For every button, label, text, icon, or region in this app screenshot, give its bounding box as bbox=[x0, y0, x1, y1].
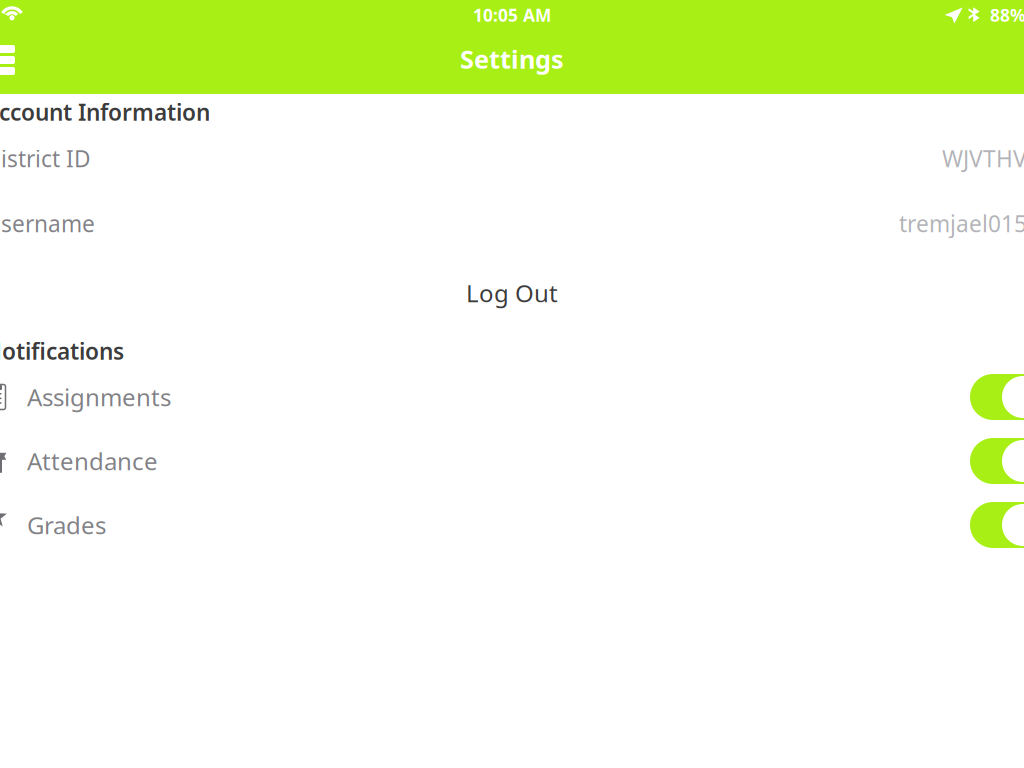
staticText: Notifications bbox=[0, 336, 124, 366]
button[interactable]: District ID bbox=[0, 126, 1024, 191]
staticText: Settings bbox=[460, 42, 564, 76]
staticText: District ID bbox=[0, 143, 91, 173]
staticText: Username bbox=[0, 208, 95, 238]
button[interactable]: Menu bbox=[0, 45, 15, 75]
staticText: Assignments bbox=[27, 381, 171, 413]
staticText: Grades bbox=[27, 509, 106, 541]
button[interactable]: Attendance notifications bbox=[970, 438, 1024, 484]
button[interactable]: Grades notifications bbox=[970, 502, 1024, 548]
button[interactable]: Log Out bbox=[0, 264, 1024, 322]
staticText: tremjael015 bbox=[899, 208, 1024, 238]
staticText: Account Information bbox=[0, 97, 210, 127]
staticText: WJVTHV bbox=[942, 143, 1024, 173]
staticText: Log Out bbox=[466, 277, 558, 309]
button[interactable]: Assignments notifications bbox=[970, 374, 1024, 420]
button[interactable]: Username bbox=[0, 191, 1024, 256]
staticText: Attendance bbox=[27, 445, 158, 477]
staticText: 88% bbox=[990, 3, 1024, 26]
staticText: 10:05 AM bbox=[473, 3, 551, 26]
